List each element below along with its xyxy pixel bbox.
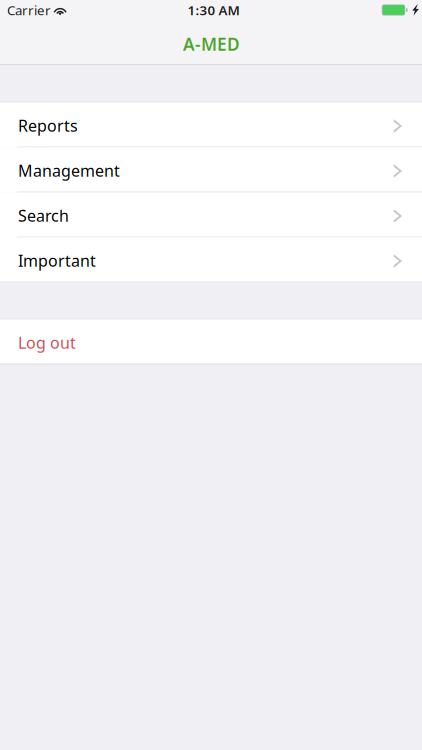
button[interactable]: Important bbox=[0, 237, 422, 282]
staticText: A-MED bbox=[183, 32, 240, 55]
staticText: Management bbox=[18, 160, 120, 181]
staticText: Carrier bbox=[7, 1, 51, 19]
button[interactable]: Search bbox=[0, 192, 422, 237]
staticText: 1:30 AM bbox=[187, 1, 239, 19]
staticText: Important bbox=[18, 250, 96, 271]
button[interactable]: Log out bbox=[0, 319, 422, 363]
button[interactable]: Management bbox=[0, 147, 422, 192]
button[interactable]: Reports bbox=[0, 102, 422, 147]
staticText: Log out bbox=[18, 332, 76, 353]
staticText: Search bbox=[18, 205, 69, 226]
staticText: Reports bbox=[18, 115, 78, 136]
